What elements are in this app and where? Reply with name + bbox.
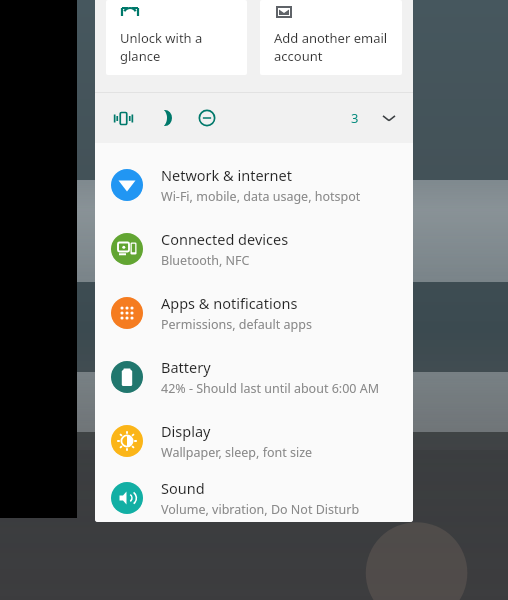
button[interactable]: Night light (147, 100, 183, 136)
staticText: Connected devices (161, 229, 289, 249)
staticText: Volume, vibration, Do Not Disturb (161, 501, 360, 518)
button[interactable]: Do not disturb (189, 100, 225, 136)
button[interactable]: Apps & notifications (95, 281, 413, 345)
staticText: Bluetooth, NFC (161, 252, 250, 269)
button[interactable]: Sound (95, 473, 413, 522)
button[interactable]: Unlock with a glance (106, 0, 247, 75)
button[interactable]: Display (95, 409, 413, 473)
button[interactable]: Network & internet (95, 153, 413, 217)
staticText: Sound (161, 478, 205, 498)
staticText: 42% - Should last until about 6:00 AM (161, 380, 380, 397)
staticText: Battery (161, 357, 211, 377)
button[interactable]: Vibrate (105, 100, 141, 136)
button[interactable]: Add another email account (260, 0, 402, 75)
staticText: Network & internet (161, 165, 292, 185)
staticText: 3 (351, 109, 359, 127)
staticText: Permissions, default apps (161, 316, 312, 333)
staticText: Wallpaper, sleep, font size (161, 444, 313, 461)
button[interactable]: Connected devices (95, 217, 413, 281)
button[interactable]: Battery (95, 345, 413, 409)
staticText: Apps & notifications (161, 293, 298, 313)
staticText: Wi-Fi, mobile, data usage, hotspot (161, 188, 361, 205)
staticText: Display (161, 421, 211, 441)
staticText: Unlock with a glance (120, 29, 203, 65)
staticText: Add another email account (274, 29, 388, 65)
button[interactable]: Expand (373, 102, 405, 134)
